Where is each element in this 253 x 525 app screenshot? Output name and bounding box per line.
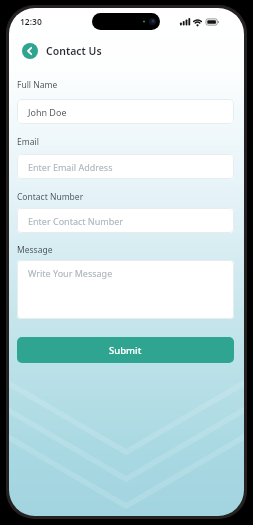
staticText: 12:30 bbox=[20, 16, 42, 28]
staticText: Enter Email Address bbox=[28, 161, 113, 173]
staticText: Email bbox=[17, 136, 39, 148]
staticText: Contact Us bbox=[46, 44, 102, 58]
staticText: Full Name bbox=[17, 79, 58, 91]
staticText: Submit bbox=[109, 344, 142, 357]
staticText: Message bbox=[17, 244, 53, 256]
staticText: John Doe bbox=[28, 106, 67, 118]
button[interactable]: Submit bbox=[17, 337, 234, 363]
staticText: Write Your Message bbox=[28, 267, 113, 279]
button[interactable]: Enter Email Address bbox=[17, 154, 234, 179]
staticText: Contact Number bbox=[17, 191, 84, 203]
button[interactable]: Enter Contact Number bbox=[17, 208, 234, 233]
button[interactable]: John Doe bbox=[17, 99, 234, 124]
staticText: Enter Contact Number bbox=[28, 215, 123, 227]
button[interactable] bbox=[22, 43, 38, 59]
button[interactable]: Write Your Message bbox=[17, 260, 234, 319]
